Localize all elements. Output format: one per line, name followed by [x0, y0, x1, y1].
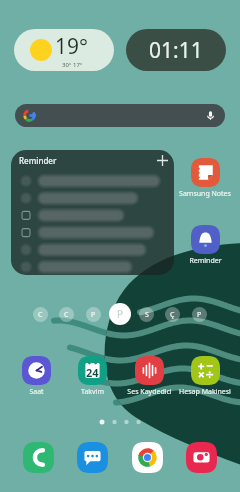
staticText: Reminder [189, 256, 222, 266]
staticText: Samsung Notes [179, 189, 231, 199]
staticText: 30° 17° [62, 61, 83, 69]
staticText: P [117, 307, 124, 321]
button[interactable]: 24 [64, 356, 120, 397]
button[interactable]: Reminder [11, 150, 174, 275]
button[interactable]: Ses Kaydedici [121, 356, 177, 397]
button[interactable]: C [33, 307, 48, 322]
button[interactable]: P [86, 307, 101, 322]
staticText: 24 [86, 365, 99, 380]
button[interactable]: Reminder [177, 225, 233, 266]
staticText: Takvim [81, 387, 104, 397]
button[interactable]: Add reminder [157, 155, 168, 166]
staticText: Saat [29, 387, 44, 397]
staticText: C [64, 310, 69, 320]
button[interactable]: Camera [186, 442, 217, 473]
button[interactable]: Samsung Notes [177, 158, 233, 199]
staticText: Ses Kaydedici [127, 387, 172, 397]
button[interactable]: P [192, 307, 207, 322]
staticText: P [197, 310, 202, 320]
other: Voice search [204, 109, 217, 122]
staticText: 01:11 [149, 36, 203, 65]
button[interactable]: Phone [23, 442, 54, 473]
staticText: 19° [55, 32, 89, 61]
button[interactable]: Messages [77, 442, 108, 473]
staticText: Reminder [19, 155, 57, 166]
button[interactable]: S [139, 307, 154, 322]
staticText: C [38, 310, 43, 320]
staticText: P [91, 310, 96, 320]
staticText: Hesap Makinesi [179, 387, 231, 397]
button[interactable]: C [59, 307, 74, 322]
button[interactable]: Hesap Makinesi [177, 356, 233, 397]
button[interactable]: 01:11 [126, 29, 226, 71]
staticText: S [145, 310, 149, 320]
button[interactable]: Voice search [15, 104, 225, 127]
button[interactable]: P [109, 303, 131, 325]
button[interactable]: Chrome [132, 442, 163, 473]
staticText: Ç [170, 310, 175, 320]
button[interactable]: Ç [165, 307, 180, 322]
button[interactable]: Saat [8, 356, 64, 397]
button[interactable]: 19° [14, 29, 114, 71]
